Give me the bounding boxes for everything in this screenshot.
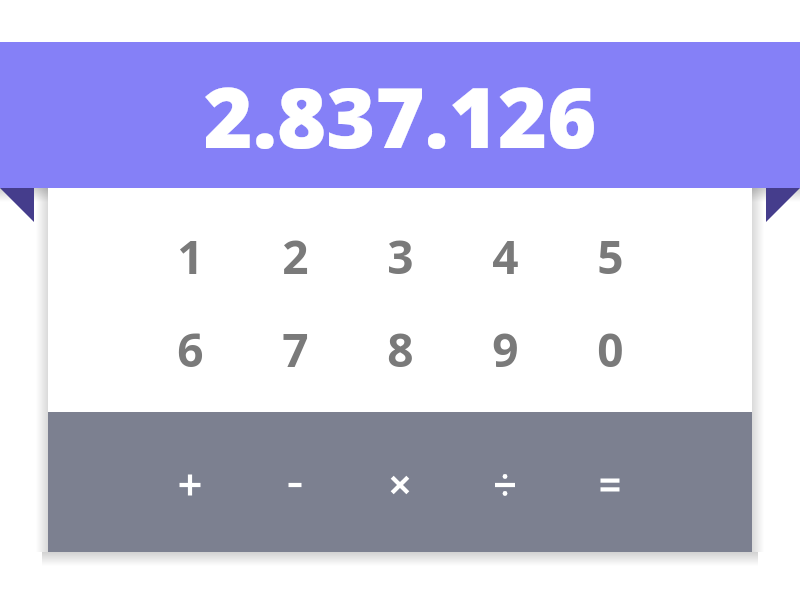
staticText: 2.837.126 [203,58,597,172]
staticText: 6 [177,318,204,381]
staticText: 9 [492,318,519,381]
button[interactable]: Plus [156,451,224,519]
button[interactable]: 9 [469,313,541,385]
button[interactable]: 2 [259,220,331,292]
staticText: 5 [597,225,624,288]
button[interactable]: Divide [471,451,539,519]
button[interactable]: 5 [574,220,646,292]
button[interactable]: 7 [259,313,331,385]
button[interactable]: 8 [364,313,436,385]
button[interactable]: 4 [469,220,541,292]
button[interactable]: Equals [576,451,644,519]
button[interactable]: 3 [364,220,436,292]
button[interactable]: 2.837.126 [0,42,800,188]
staticText: 7 [282,318,309,381]
button[interactable]: Minus [261,451,329,519]
staticText: 4 [492,225,519,288]
staticText: 0 [597,318,624,381]
staticText: 8 [387,318,414,381]
button[interactable]: Multiply [366,451,434,519]
button[interactable]: 0 [574,313,646,385]
staticText: 3 [387,225,414,288]
button[interactable]: 6 [154,313,226,385]
button[interactable]: 1 [154,220,226,292]
staticText: 2 [282,225,309,288]
staticText: 1 [177,225,204,288]
